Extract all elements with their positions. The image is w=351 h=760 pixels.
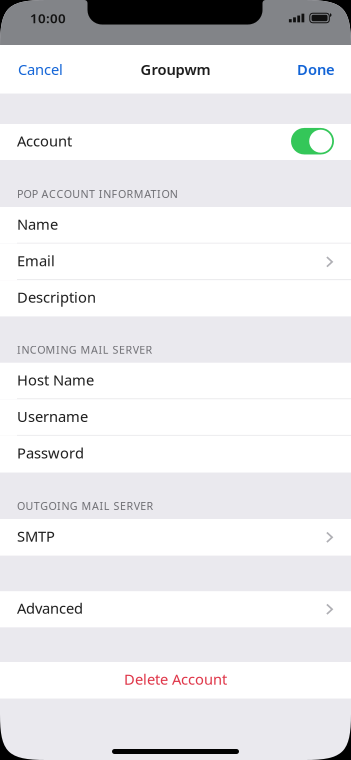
- button[interactable]: Username: [0, 399, 351, 436]
- staticText: OUTGOING MAIL SERVER: [17, 499, 154, 513]
- staticText: Account: [17, 131, 72, 151]
- button[interactable]: Name: [0, 207, 351, 244]
- staticText: SMTP: [17, 526, 55, 546]
- button[interactable]: Password: [0, 436, 351, 473]
- staticText: Email: [17, 251, 55, 270]
- staticText: POP ACCOUNT INFORMATION: [17, 187, 178, 201]
- staticText: Cancel: [18, 59, 63, 79]
- button[interactable]: Description: [0, 280, 351, 316]
- button[interactable]: Email: [0, 244, 351, 280]
- button[interactable]: Done: [283, 45, 351, 93]
- button[interactable]: SMTP: [0, 519, 351, 556]
- staticText: Done: [297, 59, 335, 79]
- staticText: INCOMING MAIL SERVER: [17, 343, 153, 357]
- staticText: Username: [17, 407, 88, 426]
- button[interactable]: Advanced: [0, 591, 351, 627]
- button[interactable]: Delete Account: [0, 662, 351, 698]
- staticText: Delete Account: [124, 669, 227, 689]
- staticText: Password: [17, 443, 84, 463]
- button[interactable]: Host Name: [0, 363, 351, 399]
- staticText: Description: [17, 287, 96, 307]
- staticText: Groupwm: [140, 59, 210, 79]
- staticText: Name: [17, 214, 58, 234]
- staticText: 10:00: [30, 9, 66, 27]
- button[interactable]: Cancel: [0, 45, 77, 93]
- staticText: Host Name: [17, 370, 94, 390]
- staticText: Advanced: [17, 598, 83, 618]
- button[interactable]: Account: [291, 128, 334, 154]
